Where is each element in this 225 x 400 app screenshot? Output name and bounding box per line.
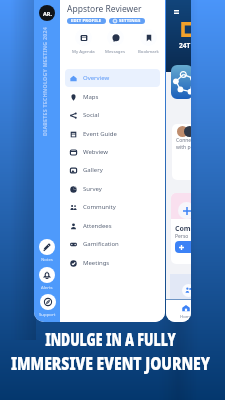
staticText: Bookmark [138, 48, 159, 54]
button[interactable]: Webview [65, 143, 160, 161]
button[interactable]: Gallery [65, 161, 160, 179]
button[interactable]: EDIT PROFILE [67, 18, 106, 24]
staticText: Perso [175, 233, 189, 240]
staticText: 24T [179, 41, 191, 50]
staticText: Messages [105, 48, 125, 54]
staticText: Appstore Reviewer [67, 3, 142, 15]
staticText: Attendees [83, 222, 112, 230]
staticText: Meetings [83, 259, 110, 267]
button[interactable]: Gamification [65, 235, 160, 253]
button[interactable]: Overview [65, 69, 160, 87]
staticText: Overview [83, 74, 110, 82]
staticText: Connec [176, 137, 191, 144]
button[interactable]: Notes [39, 239, 55, 262]
button[interactable]: Attendees [65, 217, 160, 235]
staticText: Gamification [83, 240, 119, 248]
staticText: AR. [43, 10, 52, 17]
staticText: IMMERSIVE EVENT JOURNEY [0, 350, 223, 375]
staticText: Event Guide [83, 130, 117, 138]
staticText: Notes [41, 256, 53, 262]
staticText: Webview [83, 148, 108, 156]
staticText: with pe [176, 144, 191, 151]
staticText: Maps [83, 93, 99, 101]
staticText: Survey [83, 185, 102, 193]
staticText: EDIT PROFILE [71, 18, 102, 24]
button[interactable]: Maps [65, 88, 160, 106]
button[interactable]: Event Guide [65, 125, 160, 143]
button[interactable]: Support [39, 294, 56, 317]
button[interactable]: Community [65, 198, 160, 216]
staticText: Social [83, 111, 100, 119]
button[interactable]: Alerts [39, 267, 55, 290]
staticText: My Agenda [72, 48, 95, 54]
staticText: Support [39, 311, 56, 317]
staticText: INDULGE IN A FULLY [10, 326, 211, 351]
staticText: Com [175, 224, 191, 234]
button[interactable]: Meetings [65, 254, 160, 272]
button[interactable]: Social [65, 106, 160, 124]
button[interactable]: Bookmark [138, 29, 159, 54]
button[interactable]: Survey [65, 180, 160, 198]
staticText: Gallery [83, 166, 103, 174]
button[interactable]: SETTINGS [109, 18, 145, 24]
staticText: Community [83, 203, 116, 211]
staticText: SETTINGS [119, 18, 141, 24]
staticText: Alerts [41, 284, 53, 290]
staticText: Home [180, 313, 191, 319]
button[interactable]: My Agenda [72, 29, 95, 54]
button[interactable]: Messages [105, 29, 125, 54]
